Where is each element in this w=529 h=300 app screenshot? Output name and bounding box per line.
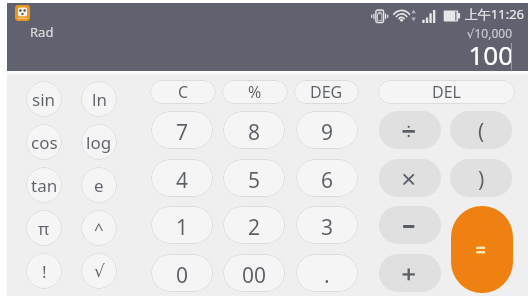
staticText: cos [31, 131, 58, 154]
staticText: 2 [248, 213, 261, 242]
staticText: C [178, 81, 189, 103]
button[interactable]: 0 [151, 254, 213, 292]
button[interactable]: ( [450, 111, 512, 149]
staticText: 0 [176, 261, 189, 290]
staticText: 00 [242, 261, 267, 290]
staticText: tan [31, 174, 58, 197]
button[interactable]: cos [26, 124, 62, 160]
staticText: DEL [432, 81, 461, 103]
button[interactable]: Rad [30, 23, 54, 41]
button[interactable]: Add [379, 254, 441, 292]
staticText: √ [94, 261, 105, 281]
button[interactable]: ^ [81, 210, 117, 246]
button[interactable]: π [26, 210, 62, 246]
button[interactable]: 1 [151, 206, 213, 244]
button[interactable]: √ [81, 253, 117, 289]
button[interactable]: 7 [151, 111, 213, 149]
staticText: 100 [387, 37, 513, 72]
staticText: 6 [321, 166, 334, 195]
button[interactable]: ln [81, 81, 117, 117]
staticText: 9 [321, 118, 334, 147]
button[interactable]: % [222, 80, 288, 104]
staticText: 上午11:26 [427, 5, 524, 23]
button[interactable]: DEL [378, 80, 515, 104]
staticText: % [248, 81, 262, 103]
button[interactable]: 00 [223, 254, 285, 292]
button[interactable]: 5 [223, 159, 285, 197]
staticText: . [324, 261, 330, 290]
staticText: 8 [248, 118, 261, 147]
staticText: π [38, 217, 50, 240]
button[interactable]: 4 [151, 159, 213, 197]
staticText: ! [42, 260, 47, 283]
button[interactable]: C [150, 80, 216, 104]
button[interactable]: 8 [223, 111, 285, 149]
staticText: 7 [176, 118, 189, 147]
button[interactable]: . [296, 254, 358, 292]
button[interactable]: sin [26, 81, 62, 117]
button[interactable]: tan [26, 167, 62, 203]
button[interactable]: Subtract [379, 206, 441, 244]
staticText: 5 [248, 166, 261, 195]
button[interactable]: e [81, 167, 117, 203]
button[interactable]: 6 [296, 159, 358, 197]
button[interactable]: 3 [296, 206, 358, 244]
staticText: sin [32, 88, 56, 111]
staticText: ( [478, 117, 485, 146]
other: App icon [15, 5, 30, 21]
button[interactable]: ! [26, 253, 62, 289]
staticText: 3 [321, 213, 334, 242]
button[interactable]: 2 [223, 206, 285, 244]
staticText: ) [478, 165, 485, 194]
staticText: ln [92, 88, 107, 111]
staticText: e [94, 174, 104, 197]
button[interactable]: ) [450, 159, 512, 197]
button[interactable]: Multiply [379, 159, 441, 197]
staticText: 1 [176, 213, 189, 242]
staticText: 4 [176, 166, 189, 195]
button[interactable]: DEG [294, 80, 359, 104]
staticText: DEG [310, 81, 343, 103]
staticText: ^ [94, 217, 104, 240]
staticText: log [86, 131, 112, 154]
button[interactable]: Divide [379, 111, 441, 149]
button[interactable]: log [81, 124, 117, 160]
button[interactable]: 9 [296, 111, 358, 149]
staticText: √10,000 [397, 25, 512, 41]
button[interactable]: Equals [451, 206, 513, 293]
